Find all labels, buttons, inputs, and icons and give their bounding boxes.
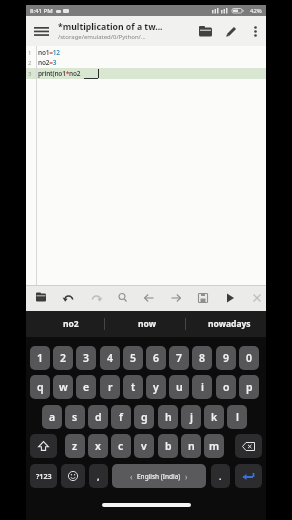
staticText: w <box>59 380 68 394</box>
button[interactable]: n <box>181 434 201 458</box>
staticText: . <box>219 470 222 482</box>
button[interactable]: v <box>134 434 154 458</box>
staticText: s <box>72 410 78 424</box>
staticText: English (India) <box>137 472 181 481</box>
staticText: 3 <box>28 70 32 78</box>
staticText: 42% <box>250 7 262 15</box>
staticText: 3 <box>83 351 90 365</box>
staticText: r <box>108 380 113 394</box>
button[interactable]: w <box>53 375 73 399</box>
button[interactable]: , <box>89 464 108 488</box>
button[interactable]: y <box>146 375 166 399</box>
button[interactable] <box>216 285 242 311</box>
button[interactable]: g <box>134 405 154 429</box>
button[interactable] <box>109 285 135 311</box>
button[interactable]: h <box>158 405 178 429</box>
button[interactable]: 9 <box>216 346 236 370</box>
button[interactable]: x <box>88 434 108 458</box>
button[interactable]: k <box>204 405 224 429</box>
button[interactable] <box>136 285 162 311</box>
staticText: t <box>131 380 136 394</box>
staticText: l <box>236 410 239 424</box>
staticText: 2 <box>60 351 67 365</box>
staticText: 5 <box>130 351 137 365</box>
button[interactable] <box>28 285 54 311</box>
button[interactable]: a <box>42 405 62 429</box>
button[interactable]: r <box>100 375 120 399</box>
button[interactable]: . <box>211 464 230 488</box>
staticText: nowadays <box>208 318 251 330</box>
button[interactable]: o <box>216 375 236 399</box>
button[interactable] <box>244 16 266 46</box>
button[interactable]: j <box>181 405 201 429</box>
staticText: q <box>37 380 44 394</box>
staticText: j <box>190 410 193 424</box>
button[interactable] <box>192 16 218 46</box>
staticText: n <box>188 439 195 453</box>
button[interactable]: 6 <box>146 346 166 370</box>
staticText: e <box>83 380 90 394</box>
button[interactable]: 5 <box>123 346 143 370</box>
staticText: no2=3 <box>38 58 57 67</box>
button[interactable]: d <box>88 405 108 429</box>
staticText: m <box>209 439 220 453</box>
staticText: x <box>95 439 101 453</box>
staticText: ‹ <box>130 471 133 482</box>
button[interactable]: l <box>227 405 247 429</box>
button[interactable]: c <box>111 434 131 458</box>
button[interactable]: e <box>76 375 96 399</box>
button[interactable] <box>82 285 108 311</box>
button[interactable]: 3 <box>76 346 96 370</box>
staticText: v <box>141 439 147 453</box>
button[interactable]: no2 <box>38 311 104 337</box>
button[interactable]: nowadays <box>196 311 262 337</box>
staticText: print(no1*no2 <box>38 69 81 78</box>
button[interactable]: z <box>65 434 85 458</box>
button[interactable] <box>218 16 244 46</box>
staticText: 1 <box>37 351 44 365</box>
button[interactable]: 1 <box>30 346 50 370</box>
button[interactable] <box>61 464 85 488</box>
button[interactable] <box>163 285 189 311</box>
button[interactable]: 4 <box>100 346 120 370</box>
staticText: /storage/emulated/0/Python/... <box>58 33 146 41</box>
button[interactable] <box>26 16 56 46</box>
button[interactable]: ?123 <box>30 464 57 488</box>
staticText: b <box>165 439 172 453</box>
button[interactable]: 7 <box>169 346 189 370</box>
button[interactable]: u <box>169 375 189 399</box>
staticText: › <box>185 471 188 482</box>
button[interactable] <box>235 434 262 458</box>
button[interactable]: 0 <box>239 346 259 370</box>
button[interactable]: f <box>111 405 131 429</box>
button[interactable]: 2 <box>53 346 73 370</box>
staticText: no2 <box>63 318 79 330</box>
staticText: 8:41 PM <box>30 7 53 15</box>
staticText: h <box>165 410 172 424</box>
staticText: 8 <box>199 351 206 365</box>
staticText: now <box>138 318 156 330</box>
button[interactable]: b <box>158 434 178 458</box>
button[interactable]: 8 <box>192 346 212 370</box>
button[interactable] <box>55 285 81 311</box>
button[interactable]: t <box>123 375 143 399</box>
staticText: p <box>246 380 253 394</box>
button[interactable] <box>235 464 262 488</box>
staticText: a <box>49 410 56 424</box>
button[interactable]: m <box>204 434 224 458</box>
button[interactable]: i <box>192 375 212 399</box>
staticText: 2 <box>28 59 32 67</box>
staticText: 7 <box>176 351 183 365</box>
staticText: , <box>97 470 100 482</box>
button[interactable]: p <box>239 375 259 399</box>
button[interactable]: ‹ <box>112 464 206 488</box>
button[interactable] <box>30 434 57 458</box>
button[interactable]: q <box>30 375 50 399</box>
staticText: *multiplication of a tw... <box>58 21 163 33</box>
button[interactable] <box>189 285 215 311</box>
button[interactable]: now <box>114 311 180 337</box>
staticText: 0 <box>246 351 253 365</box>
button[interactable]: s <box>65 405 85 429</box>
button[interactable] <box>243 285 269 311</box>
staticText: d <box>95 410 102 424</box>
